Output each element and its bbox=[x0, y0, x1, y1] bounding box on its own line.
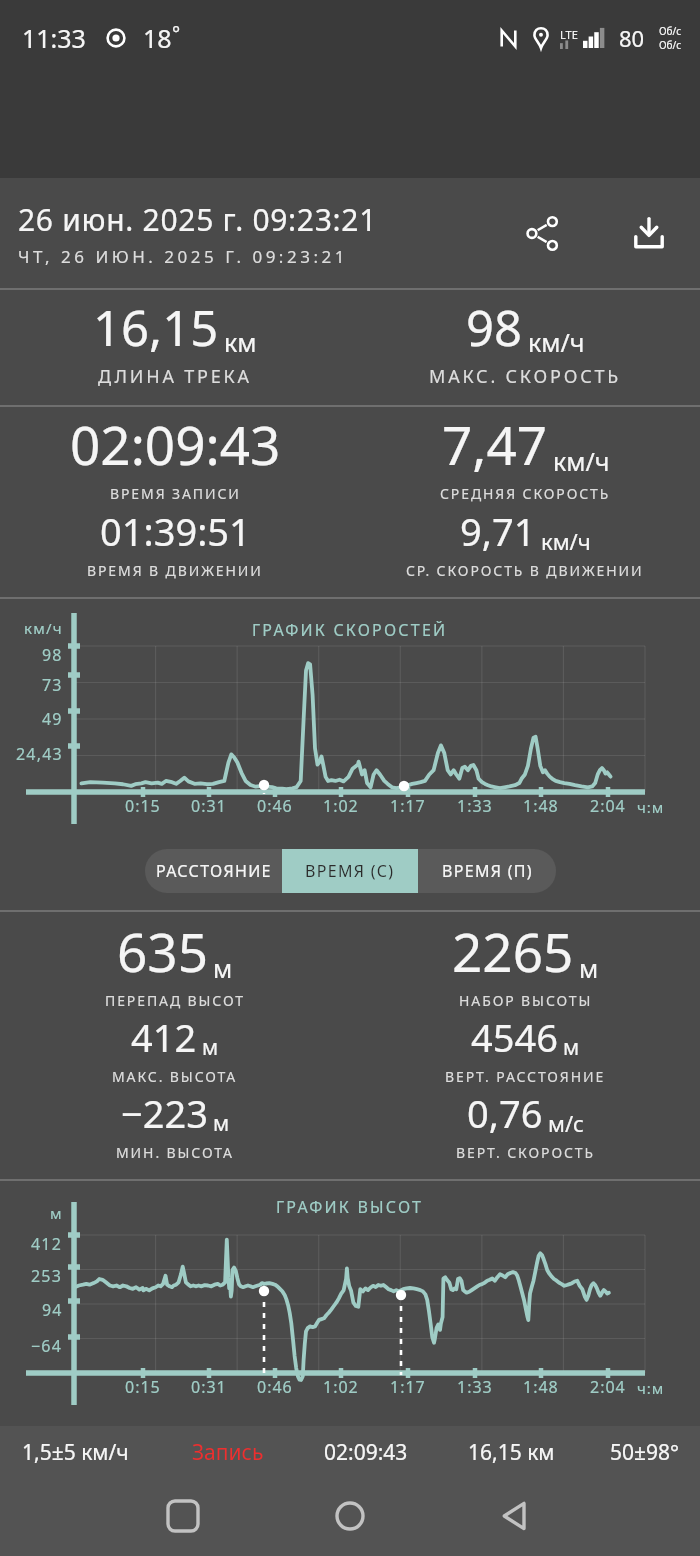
button[interactable]: РАССТОЯНИЕ bbox=[145, 849, 282, 893]
staticText: Запись bbox=[192, 1438, 264, 1467]
staticText: СРЕДНЯЯ СКОРОСТЬ bbox=[440, 484, 611, 503]
staticText: км/ч bbox=[541, 526, 591, 556]
staticText: 18 bbox=[143, 21, 172, 55]
staticText: Об/с bbox=[659, 38, 682, 52]
staticText: 635 bbox=[117, 915, 208, 987]
staticText: ВРЕМЯ (П) bbox=[442, 860, 533, 882]
staticText: км/ч bbox=[528, 325, 585, 359]
staticText: 24,43 bbox=[16, 743, 63, 765]
staticText: м bbox=[50, 1203, 63, 1223]
staticText: 26 июн. 2025 г. 09:23:21 bbox=[18, 199, 378, 240]
staticText: м bbox=[579, 951, 599, 985]
staticText: км/ч bbox=[553, 444, 610, 478]
staticText: 2:04 bbox=[590, 1376, 626, 1398]
button[interactable]: Главный экран bbox=[312, 1478, 388, 1554]
staticText: м bbox=[563, 1033, 580, 1062]
staticText: −64 bbox=[31, 1335, 63, 1357]
staticText: 1:17 bbox=[390, 1376, 426, 1398]
staticText: ВЕРТ. СКОРОСТЬ bbox=[456, 1143, 595, 1162]
staticText: м bbox=[202, 1033, 219, 1062]
staticText: ч:м bbox=[637, 797, 665, 817]
staticText: Об/с bbox=[659, 24, 682, 38]
staticText: 0:31 bbox=[191, 795, 227, 817]
staticText: МАКС. ВЫСОТА bbox=[112, 1067, 238, 1086]
staticText: LTE bbox=[560, 27, 578, 42]
staticText: м bbox=[213, 1109, 230, 1138]
staticText: 2265 bbox=[452, 915, 574, 987]
button[interactable]: ВРЕМЯ (С) bbox=[282, 849, 418, 893]
staticText: ° bbox=[172, 21, 181, 47]
staticText: 0:46 bbox=[257, 1376, 293, 1398]
staticText: 412 bbox=[31, 1233, 63, 1255]
staticText: 01:39:51 bbox=[100, 505, 251, 557]
button[interactable]: ВРЕМЯ (П) bbox=[418, 849, 556, 893]
staticText: м bbox=[213, 951, 233, 985]
staticText: ГРАФИК ВЫСОТ bbox=[276, 1196, 424, 1218]
staticText: ВРЕМЯ (С) bbox=[305, 860, 395, 882]
staticText: МИН. ВЫСОТА bbox=[116, 1143, 234, 1162]
staticText: 0:15 bbox=[125, 1376, 161, 1398]
staticText: 80 bbox=[619, 23, 645, 53]
staticText: 1:48 bbox=[523, 1376, 559, 1398]
staticText: 2:04 bbox=[590, 795, 626, 817]
staticText: км bbox=[224, 325, 257, 359]
staticText: ч:м bbox=[637, 1378, 665, 1398]
staticText: 1:17 bbox=[390, 795, 426, 817]
staticText: ДЛИНА ТРЕКА bbox=[98, 364, 252, 389]
staticText: 1:02 bbox=[323, 1376, 359, 1398]
staticText: 1:33 bbox=[457, 1376, 493, 1398]
staticText: 1,5±5 км/ч bbox=[22, 1438, 129, 1467]
staticText: МАКС. СКОРОСТЬ bbox=[429, 364, 622, 389]
staticText: 02:09:43 bbox=[324, 1438, 408, 1467]
staticText: НАБОР ВЫСОТЫ bbox=[459, 991, 593, 1010]
button[interactable]: Назад bbox=[477, 1478, 553, 1554]
staticText: −223 bbox=[121, 1087, 208, 1139]
staticText: 98 bbox=[466, 294, 523, 361]
button[interactable]: Скачать bbox=[610, 194, 688, 272]
staticText: км/ч bbox=[24, 618, 63, 638]
staticText: 253 bbox=[31, 1265, 63, 1287]
staticText: 94 bbox=[42, 1299, 63, 1321]
staticText: 49 bbox=[42, 708, 63, 730]
staticText: 0,76 bbox=[467, 1087, 543, 1139]
staticText: ВЕРТ. РАССТОЯНИЕ bbox=[445, 1067, 606, 1086]
staticText: 16,15 км bbox=[468, 1438, 555, 1467]
staticText: 4546 bbox=[471, 1011, 558, 1063]
staticText: РАССТОЯНИЕ bbox=[156, 860, 272, 882]
staticText: 1:33 bbox=[457, 795, 493, 817]
staticText: 412 bbox=[131, 1011, 197, 1063]
staticText: ПЕРЕПАД ВЫСОТ bbox=[105, 991, 245, 1010]
button[interactable]: Поделиться bbox=[503, 194, 581, 272]
staticText: 7,47 bbox=[442, 408, 548, 480]
staticText: 02:09:43 bbox=[70, 408, 281, 480]
staticText: 0:15 bbox=[125, 795, 161, 817]
staticText: 73 bbox=[42, 674, 63, 696]
staticText: 50±98° bbox=[610, 1438, 680, 1467]
staticText: 0:46 bbox=[257, 795, 293, 817]
button[interactable]: Недавние bbox=[145, 1478, 221, 1554]
staticText: ГРАФИК СКОРОСТЕЙ bbox=[252, 619, 448, 641]
staticText: 98 bbox=[42, 644, 63, 666]
staticText: 11:33 bbox=[22, 21, 86, 55]
staticText: 16,15 bbox=[93, 294, 219, 361]
staticText: 9,71 bbox=[460, 505, 536, 557]
staticText: ВРЕМЯ В ДВИЖЕНИИ bbox=[87, 561, 263, 580]
staticText: 0:31 bbox=[191, 1376, 227, 1398]
staticText: ВРЕМЯ ЗАПИСИ bbox=[110, 484, 241, 503]
staticText: 1:02 bbox=[323, 795, 359, 817]
staticText: ЧТ, 26 ИЮН. 2025 Г. 09:23:21 bbox=[18, 245, 348, 268]
staticText: 1:48 bbox=[523, 795, 559, 817]
staticText: м/с bbox=[548, 1108, 584, 1138]
staticText: СР. СКОРОСТЬ В ДВИЖЕНИИ bbox=[406, 561, 644, 580]
